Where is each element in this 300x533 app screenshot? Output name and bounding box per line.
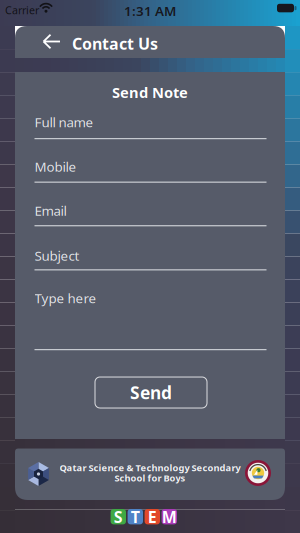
staticText: Email <box>34 202 66 219</box>
staticText: Type here <box>34 289 96 307</box>
button[interactable]: Type here <box>34 289 266 350</box>
staticText: Mobile <box>34 158 76 175</box>
staticText: 1:31 AM <box>124 2 176 20</box>
staticText: Send <box>130 381 172 404</box>
staticText: S <box>114 506 123 527</box>
staticText: Send Note <box>112 82 188 102</box>
button[interactable]: Mobile <box>34 158 266 183</box>
staticText: M <box>162 506 177 527</box>
button[interactable]: Back <box>36 26 68 56</box>
button[interactable]: Email <box>34 202 266 226</box>
button[interactable]: Subject <box>34 247 266 270</box>
staticText: Full name <box>34 113 93 131</box>
button[interactable]: Full name <box>34 113 266 139</box>
staticText: Contact Us <box>72 33 158 54</box>
staticText: Subject <box>34 247 79 264</box>
staticText: Carrier <box>5 3 39 17</box>
staticText: School for Boys <box>114 472 185 484</box>
button[interactable]: Send <box>95 377 207 408</box>
staticText: E <box>148 506 157 527</box>
staticText: Qatar Science & Technology Secondary <box>59 461 240 474</box>
staticText: T <box>131 506 140 527</box>
